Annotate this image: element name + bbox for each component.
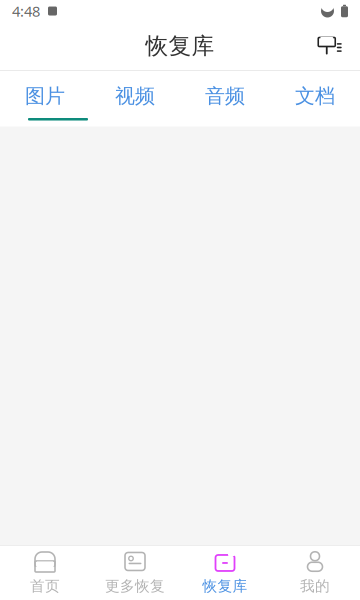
staticText: 更多恢复 <box>105 577 165 595</box>
staticText: 视频 <box>115 84 155 108</box>
button[interactable]: 我的 <box>270 544 360 600</box>
staticText: 图片 <box>25 84 65 108</box>
staticText: 恢复库 <box>202 577 247 595</box>
button[interactable]: 视频 <box>90 79 180 113</box>
button[interactable]: 音频 <box>180 79 270 113</box>
staticText: 恢复库 <box>145 32 214 60</box>
staticText: 4:48 <box>12 1 40 21</box>
button[interactable]: 更多恢复 <box>90 544 180 600</box>
button[interactable]: 恢复库 <box>180 544 270 600</box>
button[interactable]: 文档 <box>270 79 360 113</box>
button[interactable]: 筛选 <box>308 24 352 68</box>
staticText: 首页 <box>30 577 60 595</box>
staticText: 文档 <box>295 84 335 108</box>
button[interactable]: 首页 <box>0 544 90 600</box>
staticText: 我的 <box>300 577 330 595</box>
button[interactable]: 图片 <box>0 79 90 113</box>
staticText: 音频 <box>205 84 245 108</box>
